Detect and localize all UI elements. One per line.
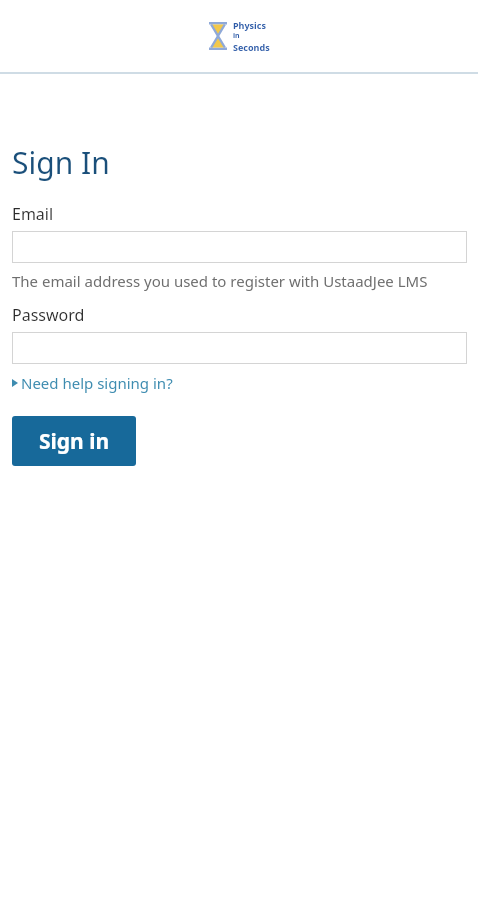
button[interactable]: Sign in bbox=[12, 416, 136, 466]
staticText: Email bbox=[12, 203, 54, 225]
staticText: Need help signing in? bbox=[21, 373, 173, 393]
button[interactable]: Physics in Seconds logo bbox=[209, 19, 270, 53]
staticText: Password bbox=[12, 304, 85, 326]
button[interactable] bbox=[12, 332, 467, 364]
other: Physics in Seconds logo bbox=[209, 22, 227, 50]
button[interactable]: Need help signing in? bbox=[12, 373, 173, 393]
staticText: in bbox=[233, 31, 240, 41]
staticText: Sign in bbox=[39, 427, 110, 456]
staticText: The email address you used to register w… bbox=[12, 271, 428, 291]
staticText: Sign In bbox=[12, 142, 110, 183]
button[interactable] bbox=[12, 231, 467, 263]
staticText: Physics bbox=[233, 19, 266, 31]
staticText: Seconds bbox=[233, 41, 270, 53]
